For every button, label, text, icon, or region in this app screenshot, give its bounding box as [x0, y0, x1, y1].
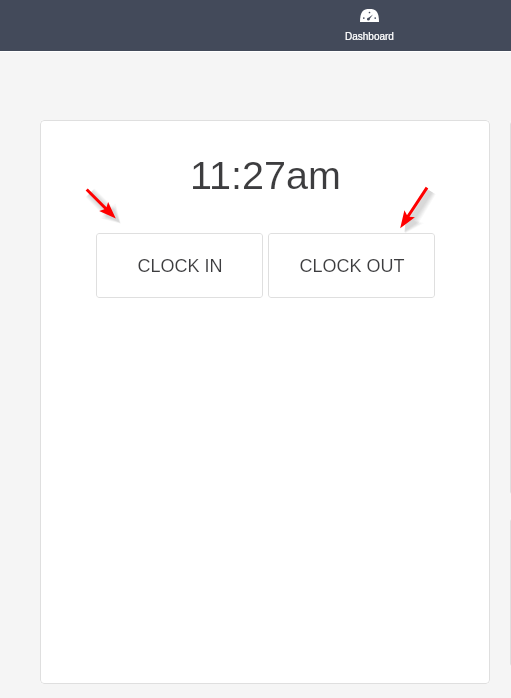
button[interactable]: CLOCK IN [96, 233, 263, 298]
staticText: CLOCK IN [137, 256, 223, 276]
button[interactable]: Dashboard [337, 3, 402, 48]
other: Dashboard [360, 9, 379, 22]
staticText: 11:27am [190, 153, 341, 197]
button[interactable]: CLOCK OUT [268, 233, 435, 298]
staticText: CLOCK OUT [299, 256, 405, 276]
staticText: Dashboard [345, 31, 394, 42]
